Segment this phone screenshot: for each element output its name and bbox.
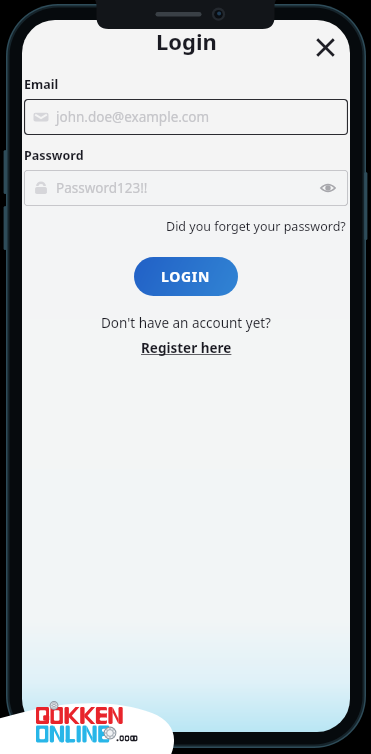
staticText: LOGIN: [161, 267, 211, 286]
button[interactable]: john.doe@example.com: [24, 99, 348, 135]
button[interactable]: LOGIN: [134, 257, 238, 296]
button[interactable]: Close: [304, 26, 346, 68]
staticText: Don't have an account yet?: [101, 314, 271, 332]
staticText: Register here: [141, 339, 232, 357]
staticText: john.doe@example.com: [56, 108, 210, 126]
staticText: Email: [24, 76, 59, 93]
button[interactable]: Register here: [138, 338, 235, 358]
staticText: Login: [156, 26, 217, 56]
button[interactable]: Password123!!: [24, 170, 348, 206]
button[interactable]: Did you forget your password?: [164, 216, 348, 237]
button[interactable]: Show password: [317, 177, 339, 199]
staticText: Password: [24, 147, 84, 164]
staticText: Password123!!: [56, 179, 148, 197]
staticText: Did you forget your password?: [166, 218, 346, 235]
